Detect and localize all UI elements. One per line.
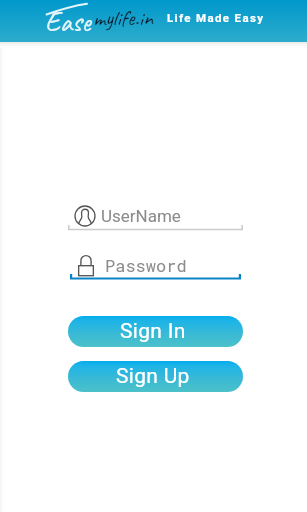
button[interactable]: UserName (68, 201, 243, 232)
button[interactable]: Password (68, 250, 243, 281)
staticText: mylife.in (93, 4, 153, 32)
staticText: Life Made Easy (167, 11, 265, 24)
button[interactable]: Sign Up (68, 361, 243, 392)
staticText: UserName (101, 206, 181, 226)
staticText: Password (105, 254, 187, 276)
staticText: Ease (45, 4, 91, 39)
staticText: Sign Up (116, 364, 190, 389)
staticText: Sign In (120, 319, 186, 344)
button[interactable]: Sign In (68, 316, 243, 347)
